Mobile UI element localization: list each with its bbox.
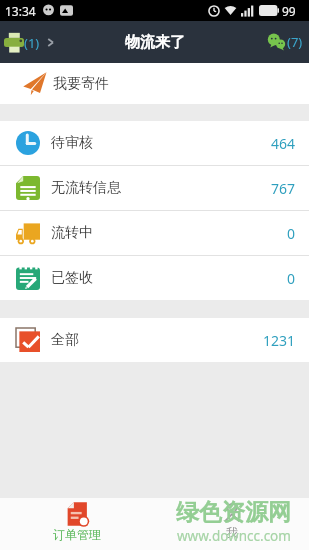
staticText: (7) [287,33,303,51]
staticText: 绿色资源网 [176,498,291,527]
staticText: 464 [271,134,296,153]
staticText: 1231 [263,331,296,350]
staticText: 物流来了 [125,33,185,52]
button[interactable]: 无流转信息 [0,166,309,210]
staticText: 767 [271,179,296,198]
button[interactable]: (7) [267,32,303,52]
staticText: 流转中 [51,224,93,242]
button[interactable]: 待审核 [0,121,309,165]
button[interactable]: 订单管理 [0,498,154,550]
staticText: 订单管理 [53,527,101,542]
staticText: 全部 [51,331,79,349]
button[interactable]: 我要寄件 [0,63,309,104]
staticText: 99 [282,3,296,19]
staticText: www.downcc.com [177,527,291,544]
staticText: 0 [287,269,296,288]
button[interactable]: (1) [4,32,55,53]
staticText: 我要寄件 [53,75,109,93]
button[interactable]: 我 [154,498,309,550]
staticText: 无流转信息 [51,179,121,197]
staticText: (1) [24,34,40,52]
staticText: 13:34 [5,3,36,19]
button[interactable]: 全部 [0,318,309,362]
staticText: 0 [287,224,296,243]
staticText: 我 [226,525,238,540]
staticText: 已签收 [51,269,93,287]
staticText: 待审核 [51,134,93,152]
button[interactable]: 已签收 [0,256,309,300]
button[interactable]: 流转中 [0,211,309,255]
